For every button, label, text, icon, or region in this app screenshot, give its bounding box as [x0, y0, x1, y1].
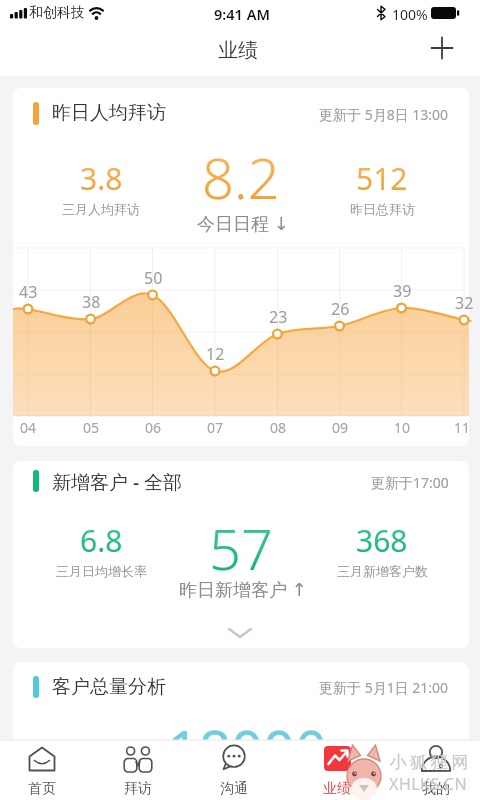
staticText: 368: [356, 520, 408, 561]
staticText: 三月日均增长率: [56, 563, 147, 579]
staticText: 今日日程 ↓: [197, 211, 289, 236]
staticText: 首页: [28, 780, 56, 798]
staticText: 18000: [167, 712, 328, 782]
staticText: XHLKS.CN: [389, 773, 468, 795]
staticText: 11: [454, 418, 471, 437]
staticText: 和创科技: [29, 4, 85, 22]
staticText: 9:41 AM: [214, 4, 270, 24]
staticText: 06: [145, 418, 162, 437]
staticText: 100%: [392, 5, 428, 24]
staticText: 三月新增客户数: [337, 563, 428, 579]
staticText: 57: [209, 510, 273, 580]
staticText: 3.8: [80, 158, 123, 199]
button[interactable]: 拜访: [90, 740, 186, 800]
staticText: 昨日新增客户 ↑: [179, 577, 307, 602]
staticText: 我的: [422, 780, 450, 798]
button[interactable]: [428, 34, 456, 62]
staticText: 23: [269, 306, 288, 328]
staticText: 12: [206, 343, 225, 365]
staticText: 更新于 5月8日 13:00: [319, 105, 449, 124]
staticText: 50: [144, 267, 163, 289]
staticText: 39: [393, 280, 412, 302]
staticText: 26: [331, 298, 350, 320]
staticText: 512: [356, 158, 408, 199]
staticText: 10: [394, 418, 411, 437]
staticText: 昨日人均拜访: [52, 101, 166, 125]
staticText: 业绩: [218, 38, 258, 63]
button[interactable]: [220, 620, 260, 646]
staticText: 更新于 5月1日 21:00: [319, 678, 449, 697]
button[interactable]: 沟通: [186, 740, 282, 800]
staticText: 沟通: [220, 780, 248, 798]
staticText: 更新于17:00: [371, 473, 449, 492]
staticText: 客户总量分析: [52, 675, 166, 699]
staticText: 04: [20, 418, 37, 437]
staticText: 09: [332, 418, 349, 437]
button[interactable]: 首页: [0, 740, 90, 800]
staticText: 8.2: [202, 139, 280, 209]
staticText: 32: [455, 292, 474, 314]
staticText: 业绩: [323, 780, 351, 798]
staticText: 43: [19, 281, 38, 303]
staticText: 05: [83, 418, 100, 437]
staticText: 三月人均拜访: [62, 201, 140, 217]
staticText: 38: [82, 291, 101, 313]
button[interactable]: 我的: [388, 740, 480, 800]
staticText: 昨日总拜访: [350, 201, 415, 217]
staticText: 拜访: [124, 780, 152, 798]
staticText: 07: [207, 418, 224, 437]
button[interactable]: 业绩: [289, 740, 385, 800]
staticText: 6.8: [80, 520, 123, 561]
staticText: 新增客户 - 全部: [52, 469, 182, 495]
staticText: 小狐狸网: [388, 752, 470, 773]
staticText: 08: [270, 418, 287, 437]
